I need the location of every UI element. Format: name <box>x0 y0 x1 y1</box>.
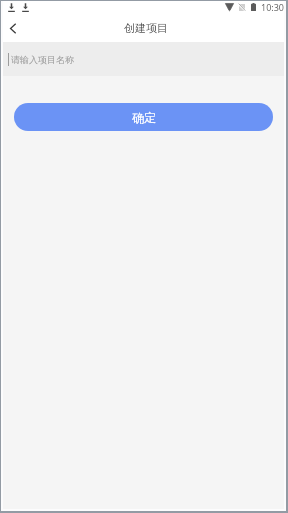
staticText: 确定 <box>132 110 156 125</box>
staticText: 请输入项目名称 <box>11 54 74 65</box>
button[interactable]: 请输入项目名称 <box>3 42 284 76</box>
staticText: 创建项目 <box>124 21 168 35</box>
staticText: 10:30 <box>261 1 285 13</box>
button[interactable]: Back <box>3 18 27 42</box>
button[interactable]: 确定 <box>14 103 273 131</box>
